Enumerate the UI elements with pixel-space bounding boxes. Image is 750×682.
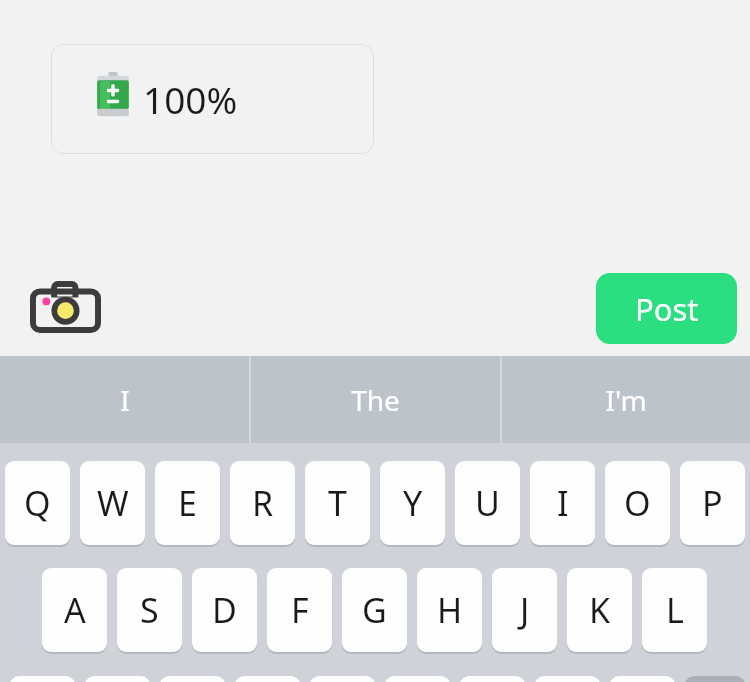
staticText: T — [328, 480, 347, 526]
staticText: R — [252, 480, 274, 526]
button[interactable] — [610, 676, 675, 682]
button[interactable]: 100% — [51, 44, 374, 154]
staticText: H — [437, 587, 463, 633]
button[interactable]: L — [642, 568, 707, 652]
button[interactable]: U — [455, 461, 520, 545]
button[interactable]: F — [267, 568, 332, 652]
button[interactable]: J — [492, 568, 557, 652]
button[interactable]: S — [117, 568, 182, 652]
staticText: 100% — [143, 74, 238, 124]
button[interactable]: O — [605, 461, 670, 545]
button[interactable]: H — [417, 568, 482, 652]
button[interactable]: Add photo — [30, 281, 101, 333]
staticText: L — [666, 587, 684, 633]
staticText: The — [351, 381, 400, 419]
staticText: Post — [635, 288, 699, 330]
button[interactable]: T — [305, 461, 370, 545]
staticText: A — [64, 587, 86, 633]
button[interactable]: R — [230, 461, 295, 545]
staticText: D — [212, 587, 237, 633]
staticText: I — [557, 480, 569, 526]
button[interactable]: Q — [5, 461, 70, 545]
button[interactable]: I'm — [502, 356, 750, 443]
button[interactable] — [160, 676, 225, 682]
button[interactable]: W — [80, 461, 145, 545]
button[interactable]: Y — [380, 461, 445, 545]
button[interactable]: D — [192, 568, 257, 652]
staticText: J — [520, 587, 530, 633]
staticText: O — [624, 480, 651, 526]
staticText: U — [475, 480, 500, 526]
staticText: Y — [403, 480, 423, 526]
button[interactable] — [310, 676, 375, 682]
staticText: I — [120, 381, 130, 419]
staticText: W — [97, 480, 129, 526]
button[interactable]: E — [155, 461, 220, 545]
button[interactable]: I — [530, 461, 595, 545]
button[interactable] — [85, 676, 150, 682]
button[interactable]: I — [0, 356, 249, 443]
staticText: S — [140, 587, 159, 633]
button[interactable]: K — [567, 568, 632, 652]
button[interactable] — [460, 676, 525, 682]
button[interactable]: G — [342, 568, 407, 652]
button[interactable] — [535, 676, 600, 682]
button[interactable]: P — [680, 461, 745, 545]
staticText: I'm — [605, 381, 647, 419]
staticText: K — [589, 587, 611, 633]
button[interactable] — [685, 676, 745, 682]
staticText: P — [702, 480, 723, 526]
staticText: E — [178, 480, 197, 526]
button[interactable] — [385, 676, 450, 682]
button[interactable]: The — [251, 356, 500, 443]
staticText: Q — [24, 480, 51, 526]
button[interactable]: Post — [596, 273, 737, 344]
staticText: F — [291, 587, 309, 633]
button[interactable] — [235, 676, 300, 682]
button[interactable]: A — [42, 568, 107, 652]
staticText: G — [362, 587, 387, 633]
button[interactable] — [10, 676, 75, 682]
